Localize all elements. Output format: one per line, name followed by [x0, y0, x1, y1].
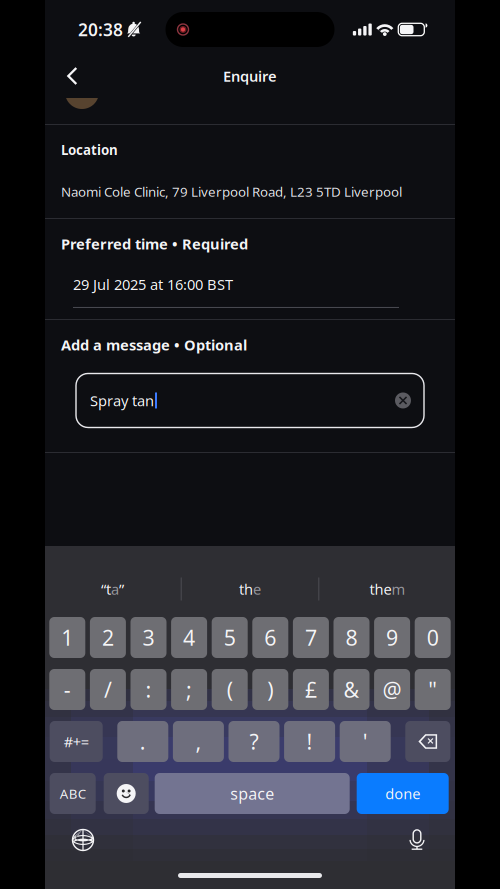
staticText: m	[392, 579, 406, 599]
staticText: done	[385, 784, 420, 803]
button[interactable]: #+=	[50, 721, 103, 762]
button[interactable]: 6	[252, 617, 288, 658]
button[interactable]: ;	[171, 669, 207, 710]
button[interactable]: ?	[228, 721, 279, 762]
staticText: Add a message • Optional	[61, 335, 247, 354]
button[interactable]: Spray tan	[76, 373, 424, 427]
button[interactable]: .	[117, 721, 168, 762]
button[interactable]: 8	[333, 617, 369, 658]
button[interactable]: Back	[52, 54, 92, 98]
staticText: #+=	[64, 732, 89, 751]
button[interactable]: /	[90, 669, 126, 710]
button[interactable]: 9	[374, 617, 410, 658]
button[interactable]: Dictate	[395, 823, 439, 857]
staticText: )	[267, 675, 273, 704]
staticText: e	[253, 579, 261, 599]
staticText: .	[140, 727, 146, 756]
staticText: (	[227, 675, 233, 704]
staticText: 7	[305, 623, 317, 652]
button[interactable]: Delete	[405, 721, 450, 762]
button[interactable]: ,	[173, 721, 224, 762]
staticText: 4	[183, 623, 195, 652]
button[interactable]: :	[130, 669, 166, 710]
staticText: -	[64, 675, 71, 704]
button[interactable]: @	[374, 669, 410, 710]
staticText: 3	[142, 623, 154, 652]
staticText: &	[343, 675, 359, 704]
button[interactable]: 5	[212, 617, 248, 658]
button[interactable]: 2	[90, 617, 126, 658]
staticText: 6	[264, 623, 276, 652]
button[interactable]: Next keyboard	[61, 823, 105, 857]
staticText: “t	[101, 579, 111, 599]
staticText: 0	[427, 623, 439, 652]
button[interactable]: -	[49, 669, 85, 710]
staticText: 1	[61, 623, 73, 652]
staticText: 5	[224, 623, 236, 652]
staticText: Location	[61, 141, 118, 159]
staticText: 2	[102, 623, 114, 652]
staticText: 29 Jul 2025 at 16:00 BST	[73, 274, 233, 294]
button[interactable]: ABC	[50, 773, 96, 814]
staticText: a	[111, 579, 119, 599]
button[interactable]: £	[293, 669, 329, 710]
staticText: 20:38	[78, 18, 123, 41]
staticText: '	[363, 727, 368, 756]
staticText: Naomi Cole Clinic, 79 Liverpool Road, L2…	[61, 183, 402, 200]
button[interactable]: 3	[130, 617, 166, 658]
button[interactable]: &	[333, 669, 369, 710]
staticText: ?	[249, 727, 258, 756]
button[interactable]: "	[415, 669, 451, 710]
button[interactable]: '	[340, 721, 391, 762]
staticText: ;	[186, 675, 192, 704]
staticText: 8	[345, 623, 357, 652]
button[interactable]: the	[319, 566, 456, 612]
staticText: /	[104, 675, 112, 704]
staticText: ABC	[60, 785, 86, 802]
staticText: !	[307, 727, 313, 756]
button[interactable]: )	[252, 669, 288, 710]
staticText: 9	[386, 623, 398, 652]
button[interactable]: space	[155, 773, 350, 814]
staticText: th	[239, 579, 253, 599]
staticText: ,	[195, 727, 201, 756]
staticText: Preferred time • Required	[61, 234, 248, 253]
button[interactable]: 4	[171, 617, 207, 658]
staticText: @	[383, 675, 402, 704]
button[interactable]: th	[182, 566, 318, 612]
button[interactable]: “t	[44, 566, 181, 612]
button[interactable]: !	[284, 721, 335, 762]
staticText: space	[230, 783, 274, 804]
button[interactable]: 29 Jul 2025 at 16:00 BST	[45, 253, 399, 308]
button[interactable]: 7	[293, 617, 329, 658]
staticText: the	[370, 579, 392, 599]
button[interactable]: (	[212, 669, 248, 710]
staticText: Spray tan	[90, 391, 154, 410]
staticText: Enquire	[223, 66, 277, 86]
staticText: ”	[119, 579, 124, 599]
staticText: :	[145, 675, 151, 704]
button[interactable]: 0	[415, 617, 451, 658]
button[interactable]: Emoji	[104, 773, 149, 814]
staticText: "	[428, 675, 437, 704]
button[interactable]: 1	[49, 617, 85, 658]
staticText: £	[305, 675, 317, 704]
button[interactable]: done	[357, 773, 449, 814]
